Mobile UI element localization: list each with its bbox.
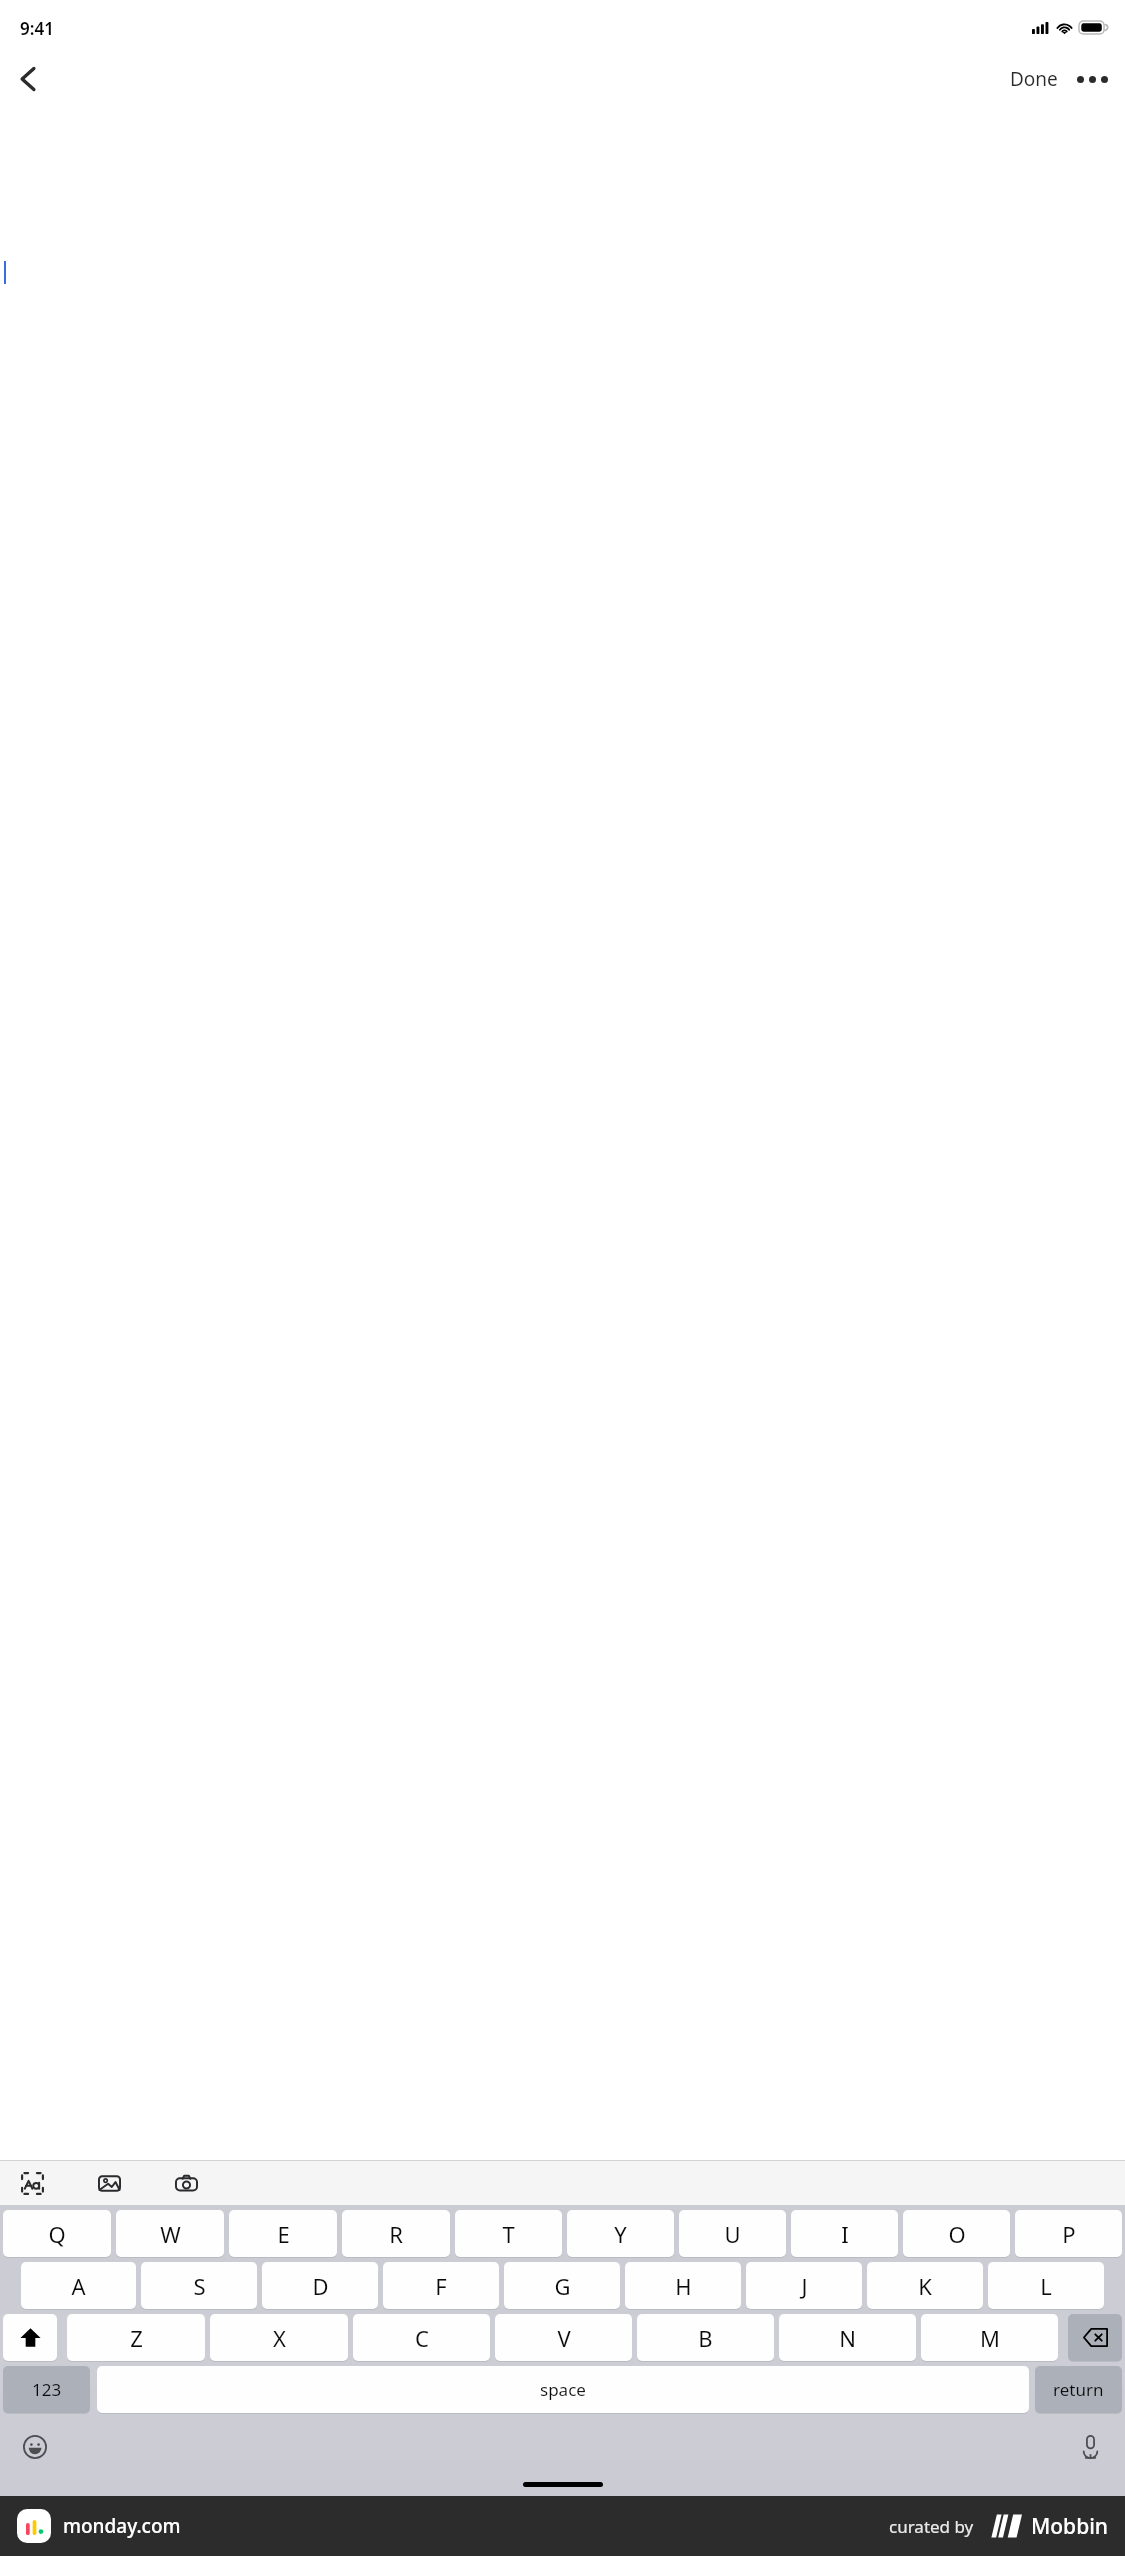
button[interactable]: X: [210, 2314, 348, 2361]
button[interactable]: More options: [1073, 59, 1111, 99]
staticText: P: [1062, 2219, 1076, 2249]
staticText: D: [312, 2271, 329, 2301]
staticText: V: [557, 2323, 571, 2353]
staticText: H: [675, 2271, 692, 2301]
button[interactable]: D: [262, 2262, 378, 2309]
button[interactable]: P: [1015, 2210, 1122, 2257]
button[interactable]: B: [637, 2314, 774, 2361]
button[interactable]: Camera: [164, 2161, 208, 2205]
staticText: T: [502, 2219, 515, 2249]
button[interactable]: E: [229, 2210, 337, 2257]
button[interactable]: Text format: [10, 2161, 54, 2205]
staticText: O: [948, 2219, 966, 2249]
staticText: 9:41: [20, 17, 54, 40]
button[interactable]: C: [353, 2314, 490, 2361]
staticText: S: [193, 2271, 206, 2301]
button[interactable]: Z: [67, 2314, 205, 2361]
button[interactable]: F: [383, 2262, 499, 2309]
staticText: Mobbin: [1031, 2512, 1108, 2541]
button[interactable]: Photo library: [87, 2161, 131, 2205]
staticText: R: [389, 2219, 403, 2249]
button[interactable]: S: [141, 2262, 257, 2309]
staticText: B: [698, 2323, 713, 2353]
other: Backspace: [1068, 2314, 1122, 2361]
other: Shift: [3, 2314, 57, 2361]
button[interactable]: Emoji: [13, 2425, 57, 2469]
staticText: C: [415, 2323, 429, 2353]
staticText: J: [801, 2271, 808, 2301]
staticText: K: [918, 2271, 932, 2301]
button[interactable]: I: [791, 2210, 898, 2257]
button[interactable]: T: [455, 2210, 562, 2257]
button[interactable]: J: [746, 2262, 862, 2309]
button[interactable]: space: [97, 2366, 1029, 2413]
staticText: 123: [32, 2378, 62, 2401]
button[interactable]: V: [495, 2314, 632, 2361]
button[interactable]: M: [921, 2314, 1058, 2361]
button[interactable]: Back: [4, 55, 52, 103]
staticText: F: [435, 2271, 447, 2301]
button[interactable]: Q: [3, 2210, 111, 2257]
button[interactable]: Dictation: [1068, 2425, 1112, 2469]
button[interactable]: Y: [567, 2210, 674, 2257]
staticText: L: [1040, 2271, 1052, 2301]
staticText: return: [1053, 2378, 1104, 2401]
button[interactable]: R: [342, 2210, 450, 2257]
button[interactable]: [3, 2314, 57, 2361]
button[interactable]: O: [903, 2210, 1010, 2257]
button[interactable]: A: [21, 2262, 136, 2309]
button[interactable]: [1068, 2314, 1122, 2361]
button[interactable]: U: [679, 2210, 786, 2257]
button[interactable]: K: [867, 2262, 983, 2309]
staticText: G: [554, 2271, 571, 2301]
staticText: N: [839, 2323, 856, 2353]
staticText: U: [724, 2219, 741, 2249]
button[interactable]: Done: [1004, 58, 1064, 100]
staticText: M: [980, 2323, 1000, 2353]
staticText: X: [273, 2323, 286, 2353]
staticText: curated by: [889, 2515, 974, 2538]
staticText: Q: [48, 2219, 66, 2249]
button[interactable]: L: [988, 2262, 1104, 2309]
staticText: A: [71, 2271, 86, 2301]
button[interactable]: H: [625, 2262, 741, 2309]
staticText: E: [277, 2219, 290, 2249]
button[interactable]: 123: [3, 2366, 90, 2413]
staticText: Done: [1010, 66, 1058, 92]
staticText: space: [540, 2378, 586, 2401]
staticText: W: [160, 2219, 181, 2249]
button[interactable]: W: [116, 2210, 224, 2257]
staticText: monday.com: [63, 2513, 181, 2539]
staticText: Y: [614, 2219, 627, 2249]
button[interactable]: N: [779, 2314, 916, 2361]
staticText: Z: [130, 2323, 143, 2353]
staticText: I: [841, 2219, 849, 2249]
button[interactable]: return: [1035, 2366, 1122, 2413]
button[interactable]: G: [504, 2262, 620, 2309]
